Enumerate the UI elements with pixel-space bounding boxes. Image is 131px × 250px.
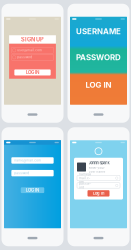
staticText: password [14, 171, 29, 175]
staticText: LOG IN [26, 70, 39, 75]
staticText: LOG IN [26, 188, 39, 193]
button[interactable]: LOG IN [14, 69, 51, 75]
staticText: enter your user name [88, 166, 105, 173]
button[interactable]: LOG IN [70, 81, 127, 89]
staticText: LOG IN [85, 80, 111, 90]
staticText: password [79, 182, 91, 189]
button[interactable]: Log In [87, 190, 109, 197]
staticText: PASSWORD [76, 53, 121, 62]
staticText: name@mail.com [79, 172, 91, 184]
staticText: Jonhn Spark [88, 161, 109, 165]
staticText: USERNAME [76, 27, 121, 36]
button[interactable]: LOG IN [21, 187, 44, 193]
staticText: SIGN UP [21, 36, 44, 43]
staticText: Log In [93, 191, 104, 196]
staticText: password [17, 55, 32, 59]
staticText: user@mail.com [17, 48, 42, 52]
staticText: name@mail.com [14, 159, 41, 162]
